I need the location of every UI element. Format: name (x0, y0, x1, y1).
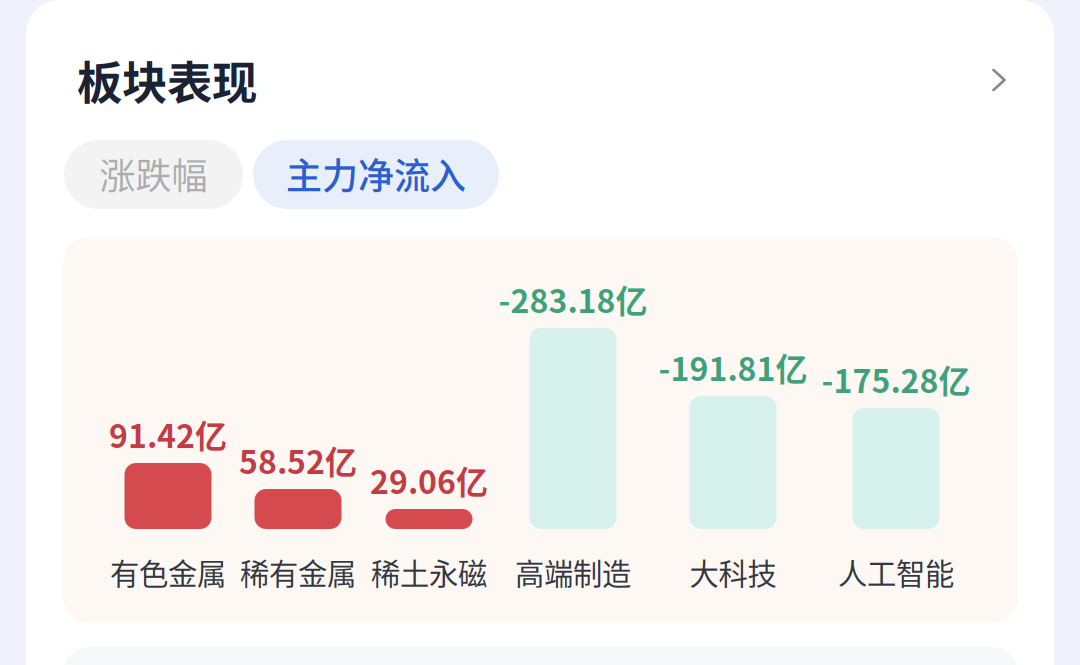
staticText: -191.81亿 (658, 344, 807, 390)
staticText: 主力净流入 (286, 147, 466, 199)
staticText: 稀土永磁 (371, 551, 487, 593)
button[interactable]: 板块表现，查看全部 (77, 42, 1006, 118)
button[interactable]: 涨跌幅 (64, 140, 243, 209)
staticText: 大科技 (689, 551, 776, 593)
button[interactable]: 主力净流入 (253, 140, 499, 209)
staticText: 有色金属 (110, 551, 226, 593)
staticText: 人工智能 (838, 551, 954, 593)
staticText: -175.28亿 (821, 356, 970, 402)
staticText: -283.18亿 (498, 276, 647, 322)
staticText: 板块表现 (77, 47, 257, 113)
staticText: 稀有金属 (240, 551, 356, 593)
staticText: 高端制造 (515, 551, 631, 593)
staticText: 91.42亿 (109, 411, 227, 457)
staticText: 涨跌幅 (99, 147, 207, 199)
staticText: 58.52亿 (239, 437, 357, 483)
staticText: 29.06亿 (370, 457, 488, 503)
